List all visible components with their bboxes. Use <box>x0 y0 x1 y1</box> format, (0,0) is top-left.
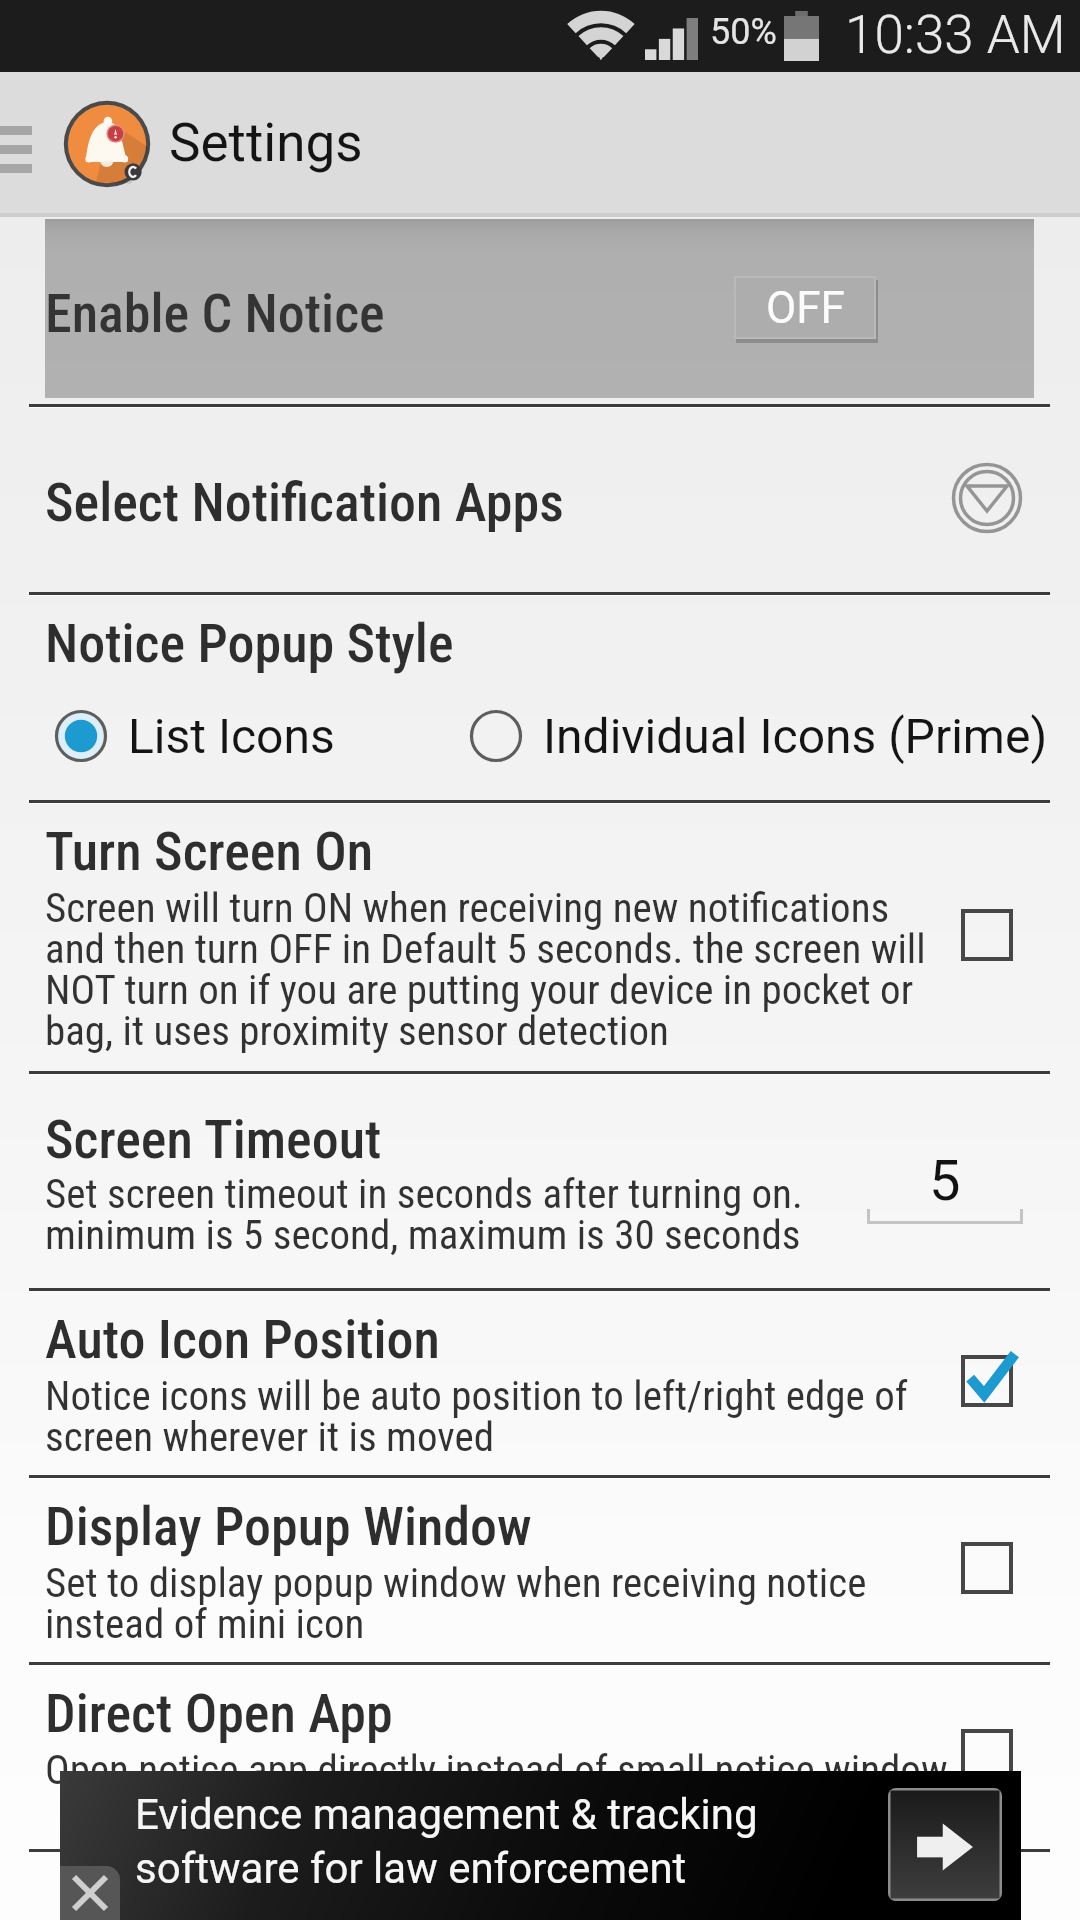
button[interactable]: Open advertisement <box>888 1788 1002 1901</box>
staticText: Display Popup Window <box>45 1495 957 1558</box>
staticText: Turn Screen On <box>45 820 957 883</box>
staticText: Individual Icons (Prime) <box>543 708 1048 764</box>
button[interactable]: Individual Icons (Prime) <box>469 708 1048 764</box>
staticText: Evidence management & tracking software … <box>135 1790 758 1893</box>
button[interactable]: Turn Screen On <box>0 804 1080 1075</box>
staticText: Set screen timeout in seconds after turn… <box>45 1170 845 1259</box>
button[interactable]: Display Popup Window <box>0 1479 1080 1666</box>
staticText: Notice icons will be auto position to le… <box>45 1372 957 1461</box>
staticText: Notice Popup Style <box>45 612 454 675</box>
button[interactable]: Direct Open App <box>0 1666 1080 1853</box>
button[interactable]: Expand notification app list <box>951 462 1023 534</box>
staticText: List Icons <box>128 708 335 764</box>
button[interactable]: OFF <box>734 276 876 339</box>
button[interactable]: Unchecked <box>953 1534 1021 1602</box>
button[interactable]: Close advertisement <box>60 1866 120 1920</box>
button[interactable]: Screen Timeout <box>0 1075 1080 1292</box>
button[interactable]: Screen timeout seconds <box>867 1148 1023 1224</box>
button[interactable]: Checked <box>953 1347 1021 1415</box>
staticText: Enable C Notice <box>45 282 385 345</box>
button[interactable]: Open navigation drawer <box>0 126 32 172</box>
staticText: Screen Timeout <box>45 1108 382 1171</box>
button[interactable]: Evidence management & tracking software … <box>60 1771 1021 1920</box>
staticText: Direct Open App <box>45 1682 957 1745</box>
staticText: OFF <box>766 282 845 334</box>
button[interactable]: Select Notification Apps <box>0 408 1080 596</box>
button[interactable]: Unchecked <box>953 1721 1021 1789</box>
button[interactable]: Auto Icon Position <box>0 1292 1080 1479</box>
staticText: Screen will turn ON when receiving new n… <box>45 884 957 1055</box>
staticText: Settings <box>169 112 363 174</box>
button[interactable]: List Icons <box>54 708 335 764</box>
staticText: Open notice app directly instead of smal… <box>45 1746 957 1794</box>
staticText: Select Notification Apps <box>45 471 564 534</box>
button[interactable]: Enable C Notice <box>45 219 1034 398</box>
button[interactable]: Unchecked <box>953 901 1021 969</box>
staticText: 50% <box>710 11 777 53</box>
staticText: 10:33 AM <box>845 4 1066 66</box>
staticText: 5 <box>929 1148 961 1214</box>
staticText: Auto Icon Position <box>45 1308 957 1371</box>
staticText: Set to display popup window when receivi… <box>45 1559 957 1648</box>
